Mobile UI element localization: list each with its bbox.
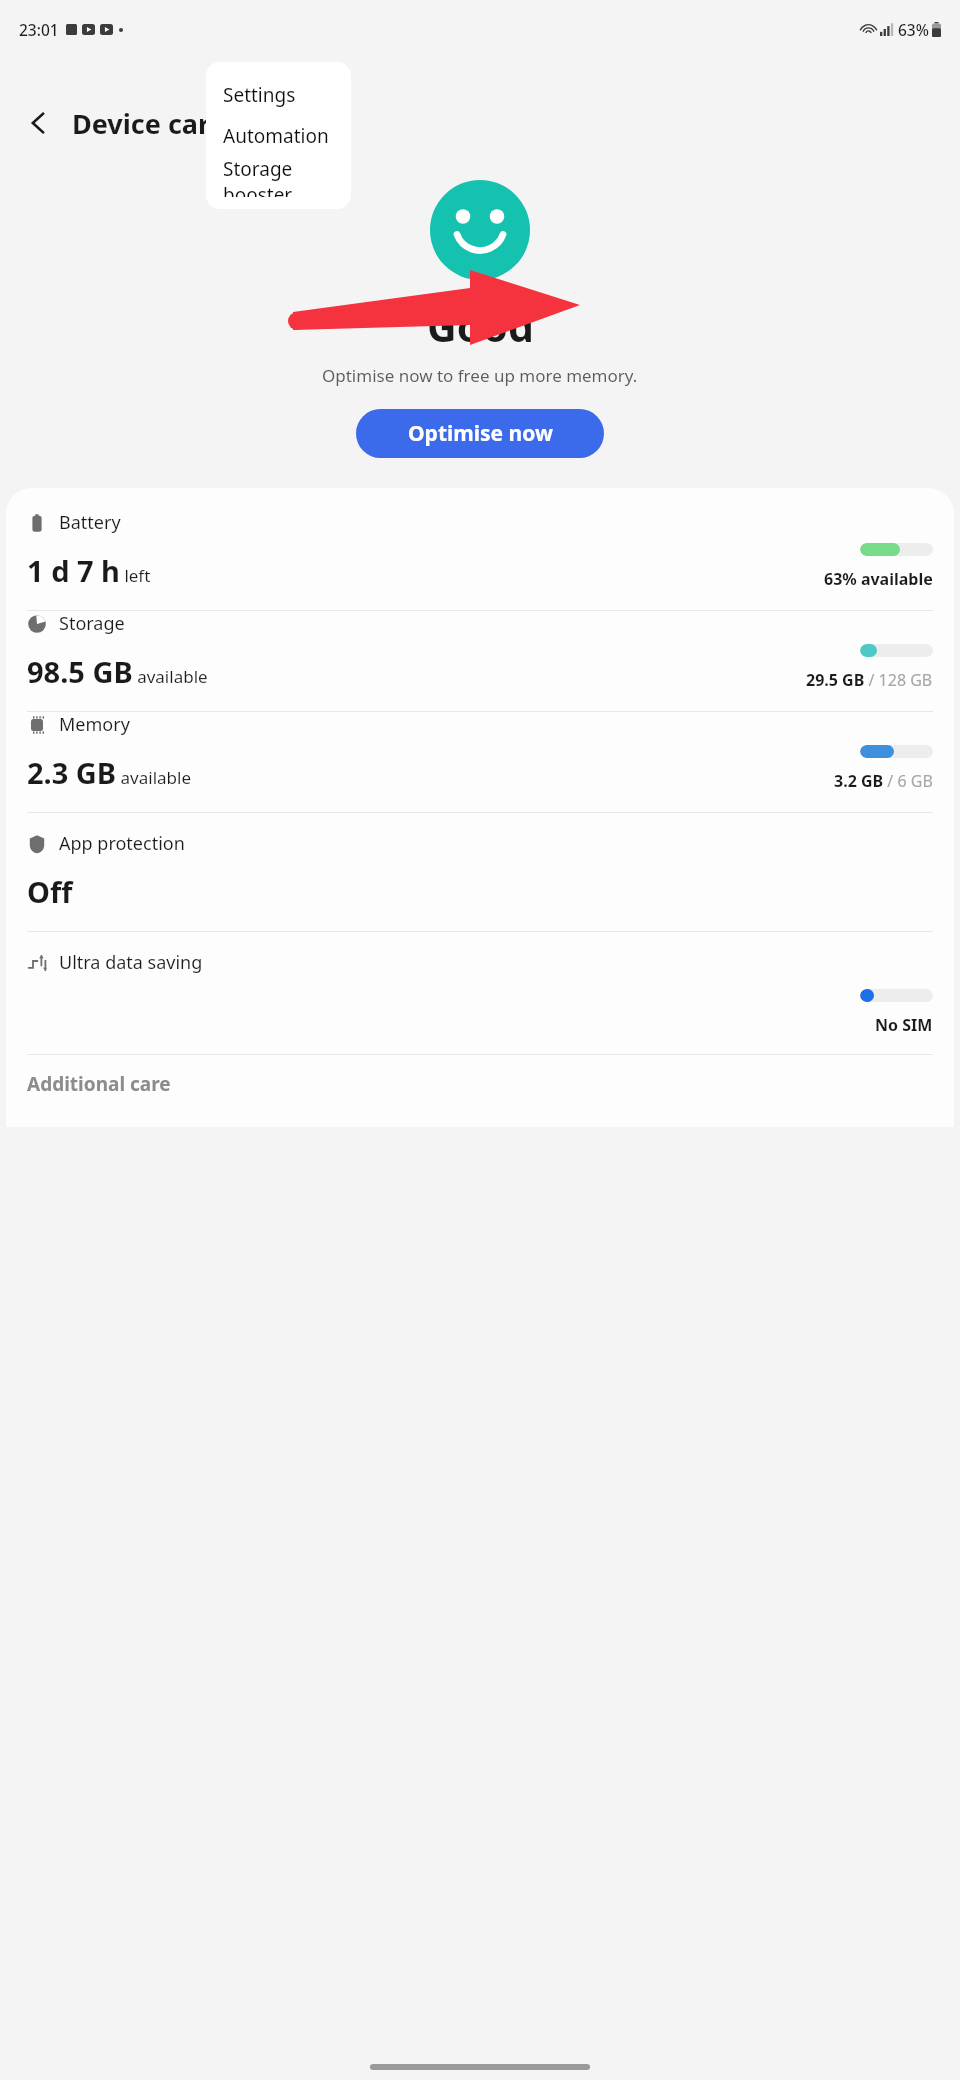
staticText: Ultra data saving	[59, 950, 203, 975]
staticText: Settings	[223, 82, 296, 108]
staticText: App protection	[59, 831, 185, 856]
button[interactable]: Battery	[27, 510, 933, 610]
staticText: Memory	[59, 712, 130, 737]
staticText: 3.2 GB / 6 GB	[834, 770, 933, 792]
button[interactable]: Back	[12, 96, 66, 150]
staticText: 23:01	[19, 19, 59, 40]
button[interactable]: Optimise now	[356, 409, 604, 458]
staticText: 63% available	[824, 568, 933, 590]
staticText: 98.5 GB available	[27, 652, 806, 691]
staticText: Optimise now to free up more memory.	[322, 364, 638, 387]
staticText: 2.3 GB available	[27, 753, 834, 792]
button[interactable]: Automation	[206, 115, 351, 156]
button[interactable]: Memory	[27, 712, 933, 812]
staticText: No SIM	[875, 1014, 933, 1036]
button[interactable]: Storage	[27, 611, 933, 711]
staticText: Good	[427, 298, 534, 354]
staticText: Storage	[59, 611, 125, 636]
staticText: Optimise now	[408, 419, 553, 448]
staticText: Device care	[72, 105, 226, 142]
staticText: 1 d 7 h left	[27, 551, 824, 590]
staticText: 29.5 GB / 128 GB	[806, 669, 933, 691]
button[interactable]: Storage booster	[206, 156, 351, 197]
button[interactable]: Ultra data saving	[27, 932, 933, 1054]
button[interactable]: Settings	[206, 74, 351, 115]
staticText: Off	[27, 872, 73, 911]
staticText: Automation	[223, 123, 329, 149]
staticText: 63%	[898, 19, 929, 40]
staticText: Battery	[59, 510, 121, 535]
staticText: Additional care	[27, 1071, 171, 1097]
button[interactable]: App protection	[27, 813, 933, 931]
staticText: Storage booster	[223, 156, 351, 197]
